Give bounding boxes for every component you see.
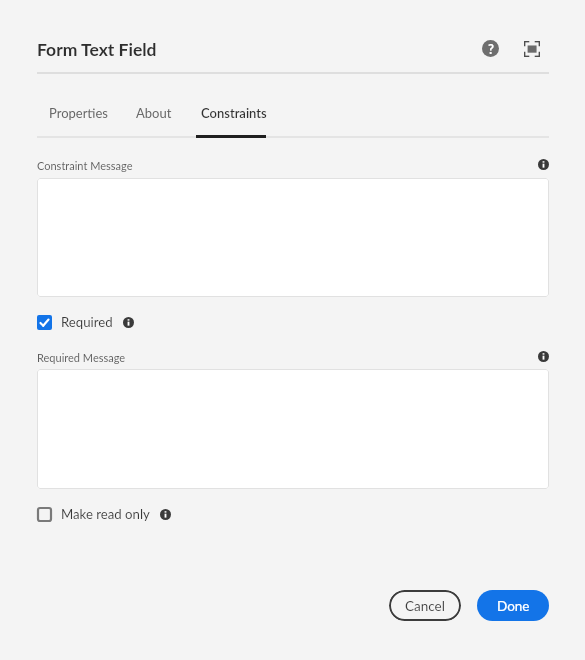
button[interactable]: Fullscreen xyxy=(516,33,548,65)
button[interactable] xyxy=(37,178,549,297)
button[interactable]: Make read only xyxy=(37,506,173,522)
staticText: About xyxy=(136,105,172,121)
staticText: Cancel xyxy=(405,598,445,614)
button[interactable]: Info xyxy=(157,506,173,522)
button[interactable]: Info xyxy=(120,314,136,330)
button[interactable]: Required xyxy=(37,314,136,330)
staticText: Constraint Message xyxy=(37,159,133,172)
button[interactable]: Constraints xyxy=(188,94,280,136)
button[interactable]: Cancel xyxy=(389,590,461,621)
staticText: ? xyxy=(488,41,494,57)
button[interactable]: Info xyxy=(533,154,553,174)
button[interactable]: Info xyxy=(533,346,553,366)
button[interactable]: Done xyxy=(477,590,549,621)
staticText: Done xyxy=(497,598,530,614)
staticText: Properties xyxy=(49,105,108,121)
button[interactable]: Help xyxy=(474,32,506,64)
staticText: Make read only xyxy=(61,506,150,522)
staticText: Form Text Field xyxy=(37,39,157,60)
staticText: Required xyxy=(61,314,113,330)
staticText: Constraints xyxy=(201,105,267,121)
button[interactable]: About xyxy=(122,94,186,136)
button[interactable]: Properties xyxy=(35,94,121,136)
button[interactable] xyxy=(37,369,549,489)
staticText: Required Message xyxy=(37,351,126,364)
